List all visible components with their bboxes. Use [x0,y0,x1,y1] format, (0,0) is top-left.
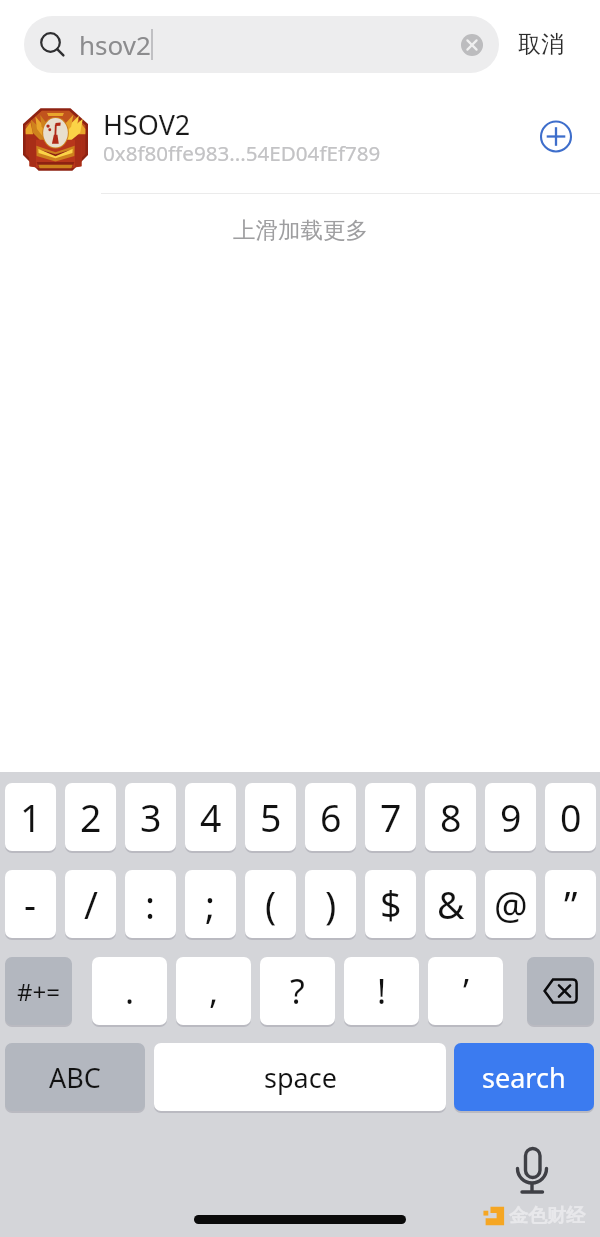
button[interactable]: ( [245,870,296,938]
button[interactable]: Backspace [527,957,594,1025]
staticText: 0x8f80ffe983...54ED04fEf789 [103,139,381,167]
button[interactable]: 8 [425,783,476,851]
staticText: ’ [463,968,469,1014]
button[interactable]: 9 [485,783,536,851]
staticText: & [437,879,465,930]
button[interactable]: 取消 [499,0,600,89]
staticText: ) [325,879,337,930]
staticText: hsov2 [79,27,151,62]
staticText: ? [290,968,305,1014]
button[interactable]: Add token [529,114,583,168]
button[interactable]: ; [185,870,236,938]
staticText: / [84,879,98,930]
staticText: ABC [49,1059,101,1096]
staticText: - [24,879,37,930]
staticText: HSOV2 [103,106,191,143]
staticText: $ [380,879,402,930]
staticText: , [209,968,219,1014]
button[interactable]: 6 [305,783,356,851]
button[interactable]: ) [305,870,356,938]
button[interactable]: #+= [5,957,72,1025]
button[interactable]: - [5,870,56,938]
staticText: ” [564,879,578,930]
button[interactable]: $ [365,870,416,938]
staticText: space [264,1059,337,1096]
button[interactable]: 2 [65,783,116,851]
button[interactable]: space [154,1043,446,1111]
button[interactable]: 0 [545,783,596,851]
staticText: 金色财经 [509,1204,585,1228]
staticText: 2 [80,792,102,843]
staticText: 5 [260,792,282,843]
staticText: 3 [140,792,162,843]
staticText: ! [377,968,387,1014]
staticText: 上滑加载更多 [233,216,368,244]
button[interactable]: . [92,957,167,1025]
staticText: 4 [200,792,222,843]
button[interactable]: ” [545,870,596,938]
staticText: 6 [320,792,342,843]
staticText: 9 [500,792,522,843]
button[interactable]: @ [485,870,536,938]
staticText: ( [265,879,277,930]
button[interactable]: search [454,1043,594,1111]
button[interactable]: ? [260,957,335,1025]
staticText: search [482,1059,566,1096]
button[interactable]: 5 [245,783,296,851]
button[interactable]: hsov2 [24,16,499,73]
button[interactable]: ABC [5,1043,145,1111]
staticText: . [125,968,135,1014]
button[interactable]: 1 [5,783,56,851]
staticText: 7 [380,792,402,843]
button[interactable]: , [176,957,251,1025]
button[interactable]: ’ [428,957,503,1025]
button[interactable]: 4 [185,783,236,851]
button[interactable]: 7 [365,783,416,851]
button[interactable]: : [125,870,176,938]
staticText: 0 [560,792,582,843]
button[interactable]: HSOV2 [0,89,600,193]
button[interactable]: 3 [125,783,176,851]
staticText: #+= [17,975,60,1008]
button[interactable]: Voice input [503,1140,561,1200]
staticText: @ [494,879,528,930]
button[interactable]: ! [344,957,419,1025]
staticText: 取消 [518,30,564,59]
staticText: ; [205,879,216,930]
staticText: 8 [440,792,462,843]
staticText: : [145,879,156,930]
button[interactable]: Clear [461,34,483,56]
button[interactable]: & [425,870,476,938]
button[interactable]: / [65,870,116,938]
staticText: 1 [20,792,42,843]
